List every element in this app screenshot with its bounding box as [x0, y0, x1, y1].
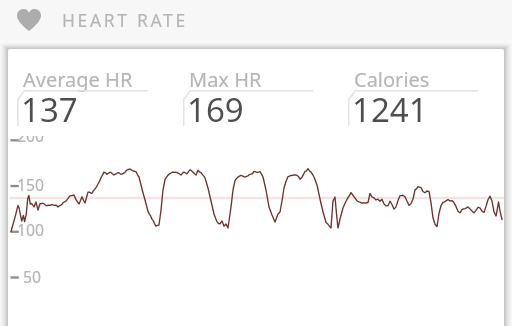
button[interactable]: Max HR	[183, 64, 323, 128]
staticText: Calories	[354, 66, 478, 92]
staticText: 150	[17, 174, 63, 198]
staticText: Average HR	[23, 66, 147, 92]
staticText: 137	[21, 87, 145, 133]
button[interactable]: Heart rate	[0, 0, 260, 49]
staticText: HEART RATE	[62, 8, 252, 34]
staticText: 1241	[352, 87, 476, 133]
staticText: Max HR	[189, 66, 313, 92]
button[interactable]: Average HR	[17, 64, 157, 128]
staticText: 200	[17, 136, 63, 149]
staticText: 169	[187, 87, 311, 133]
staticText: 100	[17, 219, 63, 243]
staticText: 50	[23, 266, 69, 290]
button[interactable]: Calories	[348, 64, 488, 128]
